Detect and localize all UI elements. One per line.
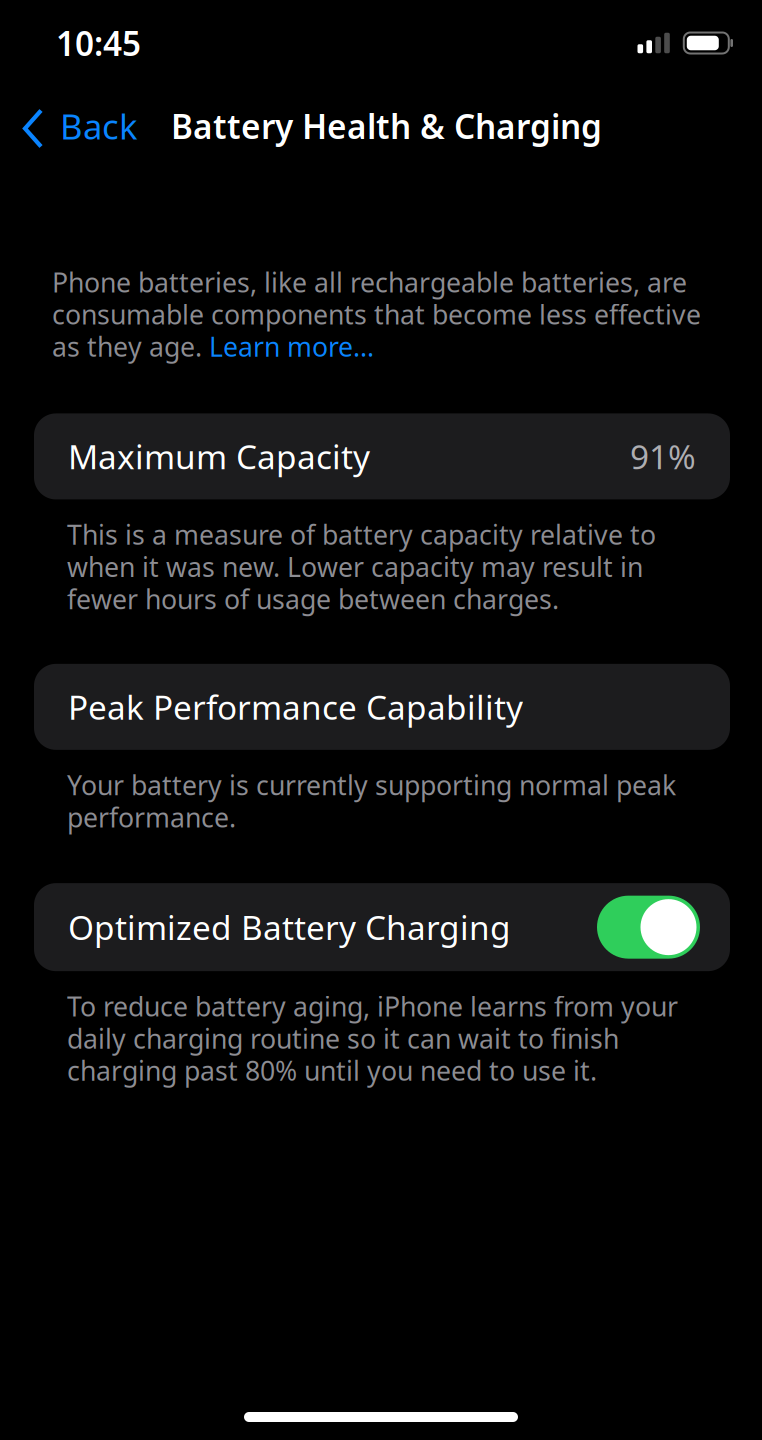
- button[interactable]: Back: [0, 91, 174, 161]
- staticText: Maximum Capacity: [68, 434, 370, 479]
- staticText: Optimized Battery Charging: [68, 905, 511, 949]
- staticText: Battery Health & Charging: [171, 104, 602, 148]
- button[interactable]: Learn more...: [209, 330, 374, 362]
- button[interactable]: Optimized Battery Charging: [34, 883, 730, 971]
- staticText: Back: [60, 103, 138, 149]
- staticText: Peak Performance Capability: [68, 685, 523, 729]
- button[interactable]: Optimized Battery Charging: [597, 896, 700, 959]
- button[interactable]: Maximum Capacity: [34, 413, 730, 499]
- staticText: Learn more...: [209, 330, 374, 362]
- staticText: This is a measure of battery capacity re…: [67, 518, 656, 615]
- staticText: as they age.: [52, 330, 209, 362]
- staticText: 10:45: [56, 21, 141, 65]
- button[interactable]: Peak Performance Capability: [34, 664, 730, 750]
- staticText: Your battery is currently supporting nor…: [67, 769, 676, 833]
- staticText: Phone batteries, like all rechargeable b…: [52, 266, 701, 330]
- staticText: 91%: [630, 434, 696, 479]
- staticText: To reduce battery aging, iPhone learns f…: [67, 990, 678, 1086]
